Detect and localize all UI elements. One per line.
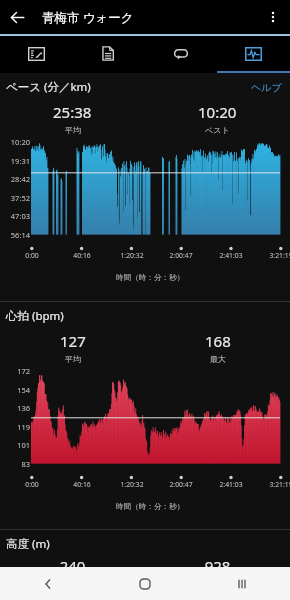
button[interactable]: Details <box>72 36 144 71</box>
staticText: 101 <box>0 440 30 450</box>
staticText: 19:31 <box>0 156 30 166</box>
staticText: 240 <box>0 556 145 567</box>
staticText: 3:21:19 <box>269 251 290 260</box>
staticText: 0:00 <box>25 251 39 260</box>
staticText: 1:20:32 <box>120 251 144 260</box>
staticText: 最大 <box>210 354 226 364</box>
staticText: 3:21:19 <box>269 480 290 489</box>
button[interactable]: Back <box>0 567 96 600</box>
button[interactable]: Back <box>0 0 34 34</box>
button[interactable]: Graphs <box>217 36 290 71</box>
staticText: 高度 (m) <box>6 536 50 552</box>
staticText: 37:52 <box>0 193 30 203</box>
staticText: 2:00:47 <box>169 251 193 260</box>
staticText: 時間（時：分：秒） <box>116 273 185 283</box>
button[interactable]: Home <box>96 567 193 600</box>
staticText: 40:16 <box>73 251 91 260</box>
staticText: 1:20:32 <box>120 480 144 489</box>
staticText: 119 <box>0 422 30 432</box>
staticText: 56:14 <box>0 230 30 240</box>
staticText: 青梅市 ウォーク <box>42 9 134 26</box>
staticText: 心拍 (bpm) <box>6 308 64 324</box>
staticText: 平均 <box>65 125 81 135</box>
staticText: ヘルプ <box>251 81 282 94</box>
button[interactable]: More options <box>256 0 290 34</box>
staticText: 時間（時：分：秒） <box>116 502 185 512</box>
staticText: 136 <box>0 403 30 413</box>
staticText: 127 <box>60 331 86 351</box>
staticText: 28:42 <box>0 174 30 184</box>
staticText: 平均 <box>65 354 81 364</box>
staticText: 172 <box>0 366 30 376</box>
button[interactable]: Laps <box>144 36 217 71</box>
staticText: ペース (分／km) <box>6 79 91 95</box>
staticText: 10:20 <box>0 137 30 147</box>
staticText: 83 <box>0 459 30 469</box>
staticText: 928 <box>145 556 290 567</box>
staticText: 47:03 <box>0 211 30 221</box>
staticText: 10:20 <box>198 102 237 122</box>
button[interactable]: Recent apps <box>193 567 290 600</box>
button[interactable]: ヘルプ <box>251 81 282 94</box>
staticText: 0:00 <box>25 480 39 489</box>
staticText: 25:38 <box>53 102 92 122</box>
staticText: ベスト <box>205 125 230 135</box>
button[interactable]: Map <box>0 36 72 71</box>
staticText: 40:16 <box>73 480 91 489</box>
staticText: 168 <box>205 331 231 351</box>
staticText: 2:41:03 <box>219 480 243 489</box>
staticText: 2:41:03 <box>219 251 243 260</box>
staticText: 2:00:47 <box>169 480 193 489</box>
staticText: 154 <box>0 385 30 395</box>
